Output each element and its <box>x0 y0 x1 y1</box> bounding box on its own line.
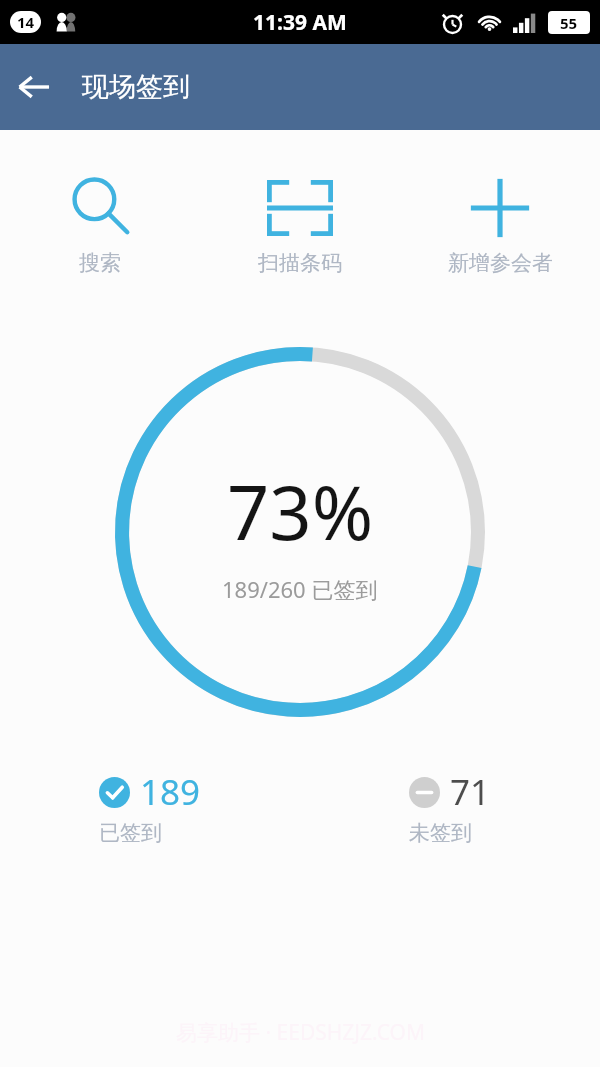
button[interactable]: 189 <box>99 768 201 846</box>
staticText: 扫描条码 <box>258 250 342 276</box>
button[interactable]: 71 <box>409 768 491 846</box>
staticText: 未签到 <box>409 820 472 846</box>
staticText: 11:39 AM <box>253 8 347 37</box>
staticText: 新增参会者 <box>448 250 553 276</box>
staticText: 14 <box>17 12 35 32</box>
staticText: 已签到 <box>99 820 162 846</box>
staticText: 71 <box>450 768 491 816</box>
button[interactable]: 扫描条码 <box>200 172 400 278</box>
staticText: 189 <box>140 768 201 816</box>
button[interactable]: Back <box>0 53 68 121</box>
button[interactable]: 搜索 <box>0 172 200 278</box>
staticText: 73% <box>227 461 374 562</box>
staticText: 189/260 已签到 <box>222 574 378 604</box>
staticText: 55 <box>560 13 578 33</box>
staticText: 现场签到 <box>82 70 190 104</box>
button[interactable]: 新增参会者 <box>400 172 600 278</box>
staticText: 搜索 <box>79 250 121 276</box>
